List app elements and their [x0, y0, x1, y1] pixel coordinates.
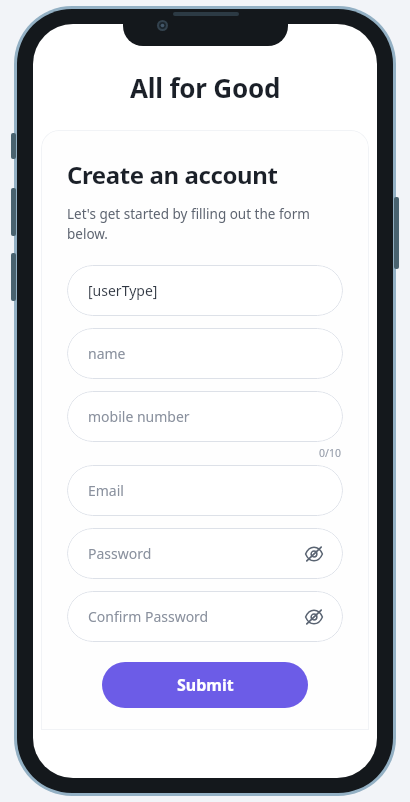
staticText: Confirm Password [88, 607, 209, 626]
staticText: Let's get started by filling out the for… [67, 205, 343, 243]
staticText: 0/10 [67, 446, 341, 460]
button[interactable]: Submit [102, 662, 308, 708]
staticText: mobile number [88, 407, 190, 426]
staticText: Email [88, 481, 124, 500]
button[interactable]: mobile number [67, 391, 343, 442]
button[interactable]: Confirm Password [67, 591, 343, 642]
staticText: [userType] [88, 281, 158, 300]
button[interactable]: Show password [299, 539, 329, 569]
button[interactable]: Password [67, 528, 343, 579]
button[interactable]: name [67, 328, 343, 379]
staticText: name [88, 344, 126, 363]
staticText: Create an account [67, 158, 278, 191]
button[interactable]: Email [67, 465, 343, 516]
button[interactable]: Show password [299, 602, 329, 632]
staticText: Submit [177, 674, 234, 696]
staticText: All for Good [130, 70, 281, 105]
button[interactable]: [userType] [67, 265, 343, 316]
staticText: Password [88, 544, 152, 563]
